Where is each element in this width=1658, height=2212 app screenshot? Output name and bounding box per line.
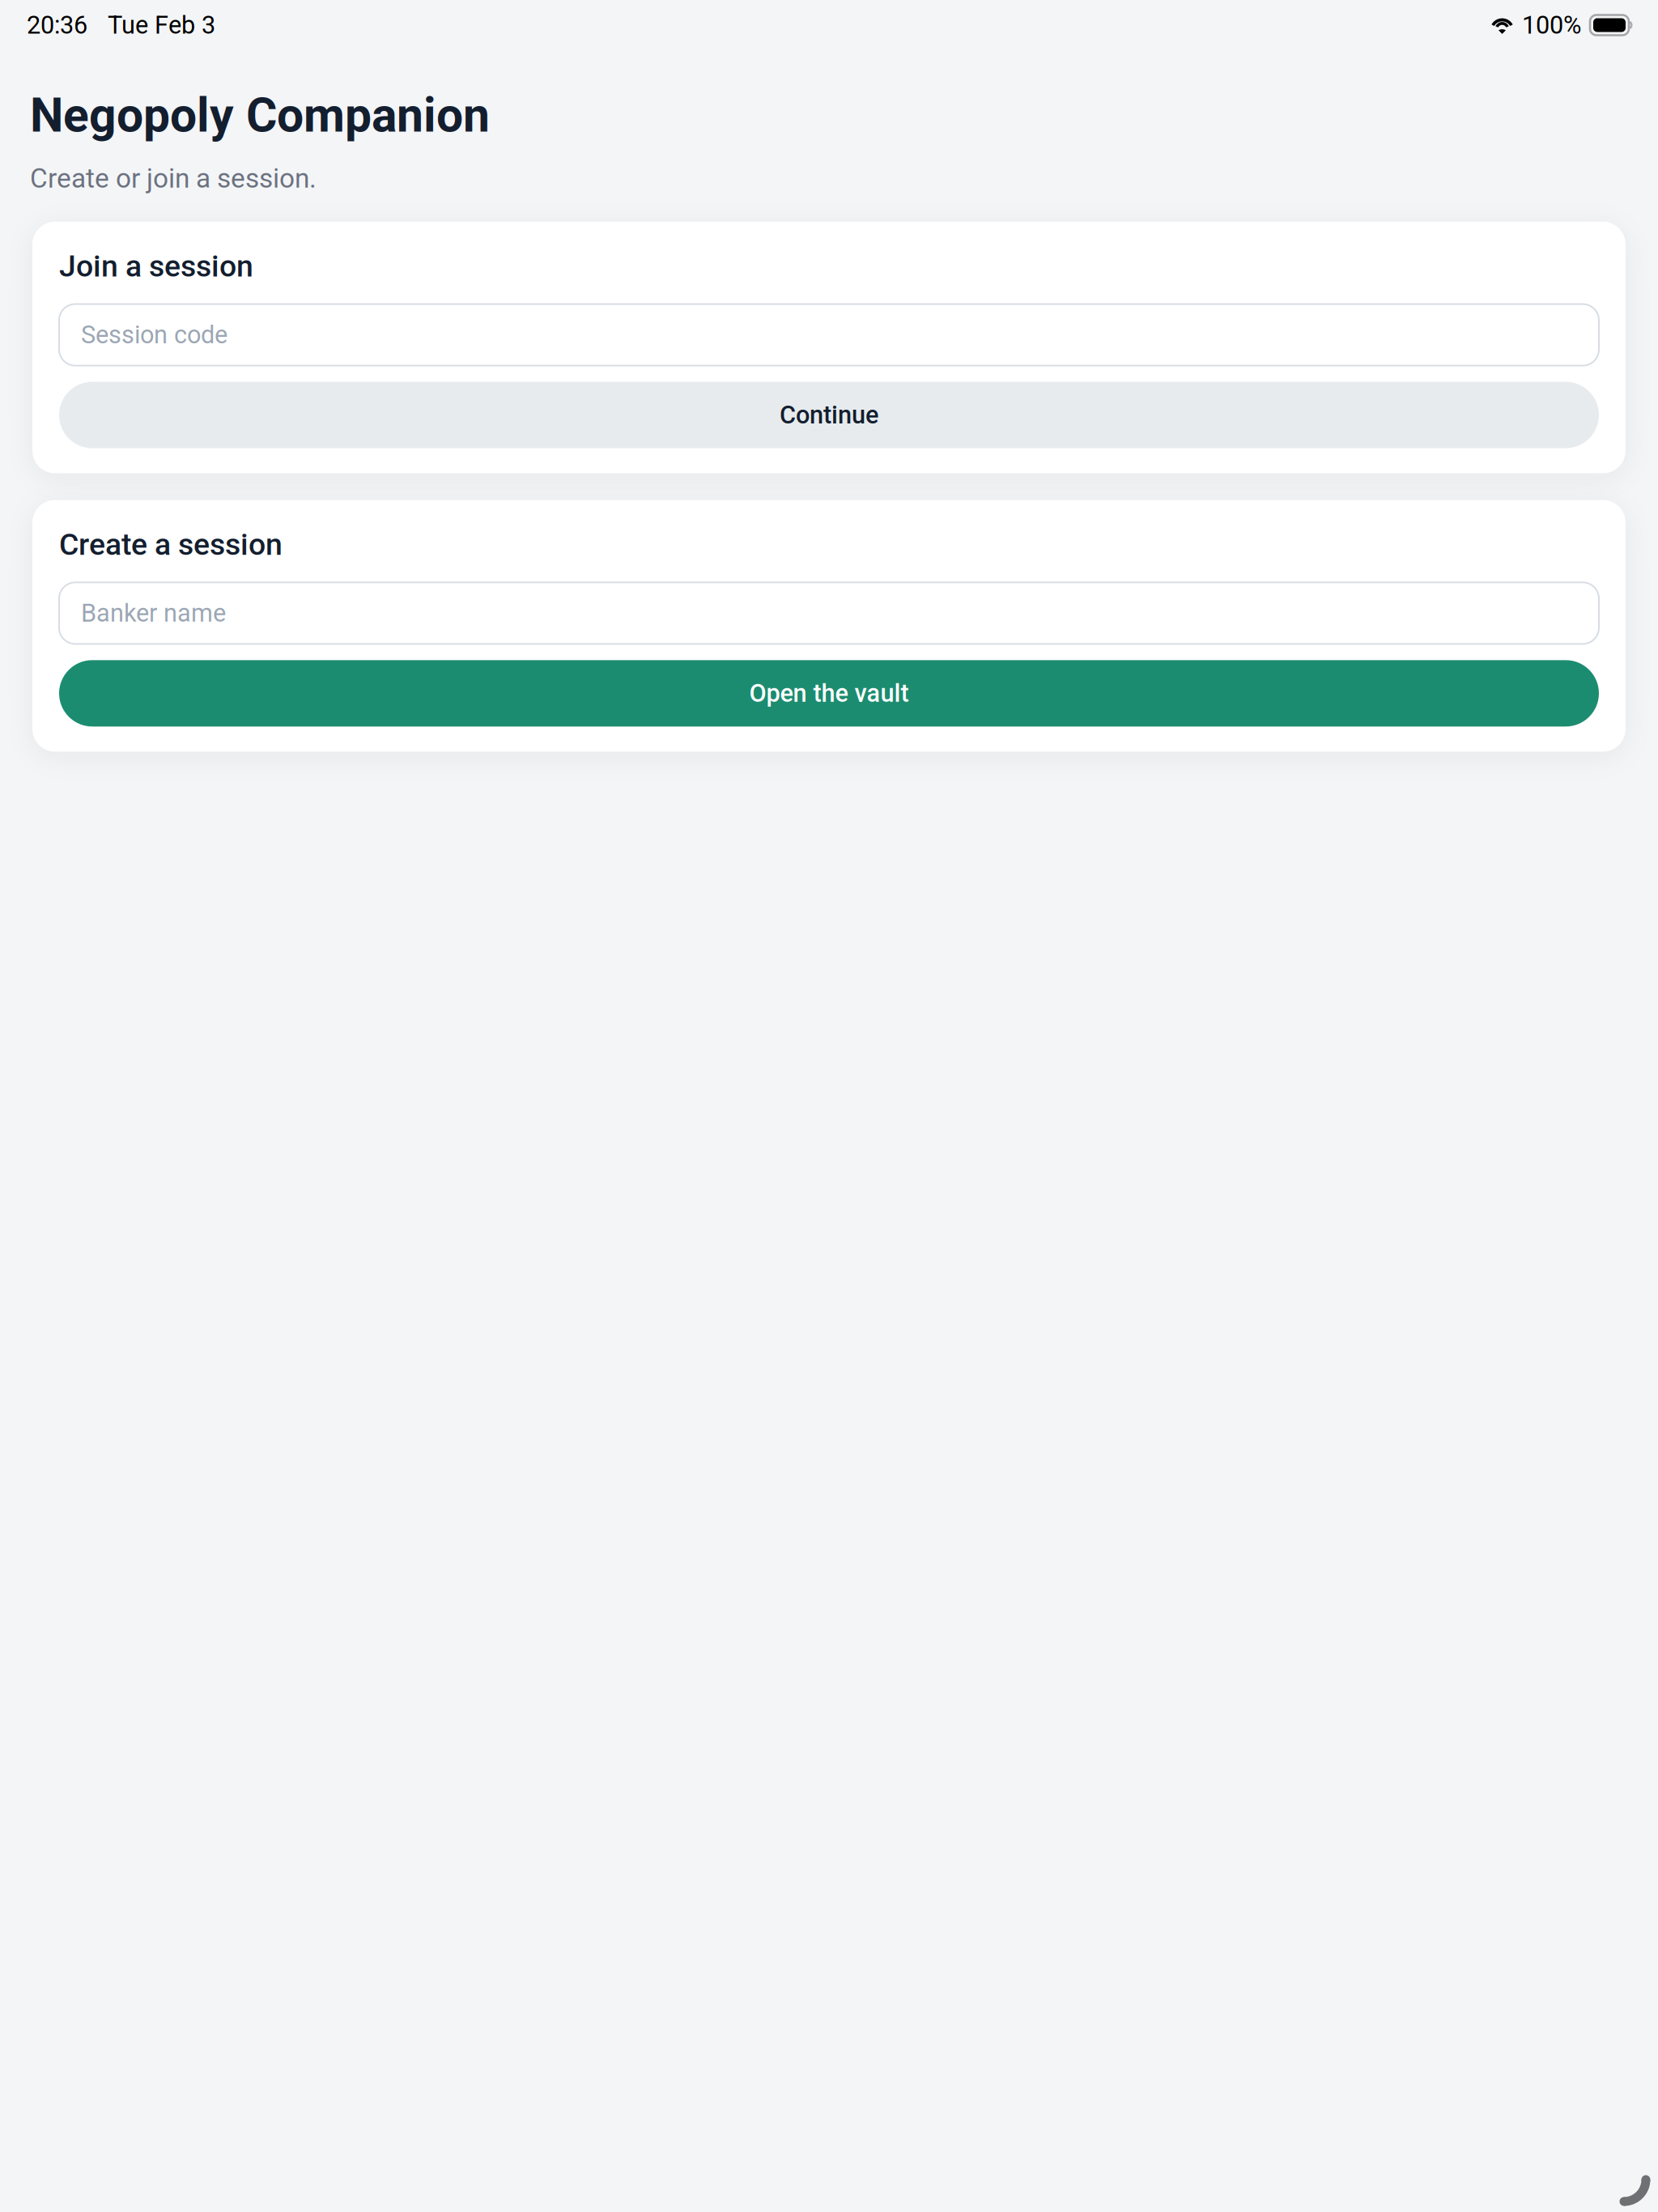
button[interactable]: Continue [59,382,1599,448]
staticText: Join a session [59,248,253,284]
button[interactable]: Open the vault [59,660,1599,727]
staticText: Continue [780,400,878,430]
staticText: Create or join a session. [30,163,317,194]
staticText: 20:36 [27,11,87,40]
staticText: 100% [1522,11,1581,40]
staticText: Banker name [81,599,226,628]
staticText: Session code [81,320,227,349]
staticText: Tue Feb 3 [108,11,215,40]
staticText: Negopoly Companion [30,87,490,143]
staticText: Create a session [59,527,283,562]
staticText: Open the vault [749,679,909,708]
